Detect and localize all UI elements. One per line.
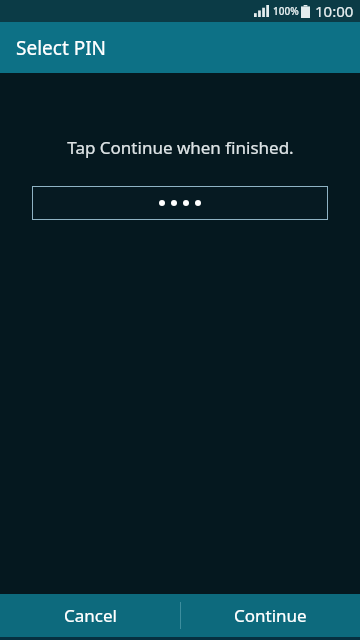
staticText: 100% [273,4,299,18]
button[interactable]: Cancel [0,594,180,637]
button[interactable]: PIN entry field [32,186,328,220]
staticText: Cancel [64,604,117,627]
staticText: Tap Continue when finished. [67,136,294,159]
staticText: 10:00 [315,1,354,21]
staticText: Select PIN [16,35,107,61]
staticText: Continue [234,604,307,627]
button[interactable]: Continue [180,594,360,637]
